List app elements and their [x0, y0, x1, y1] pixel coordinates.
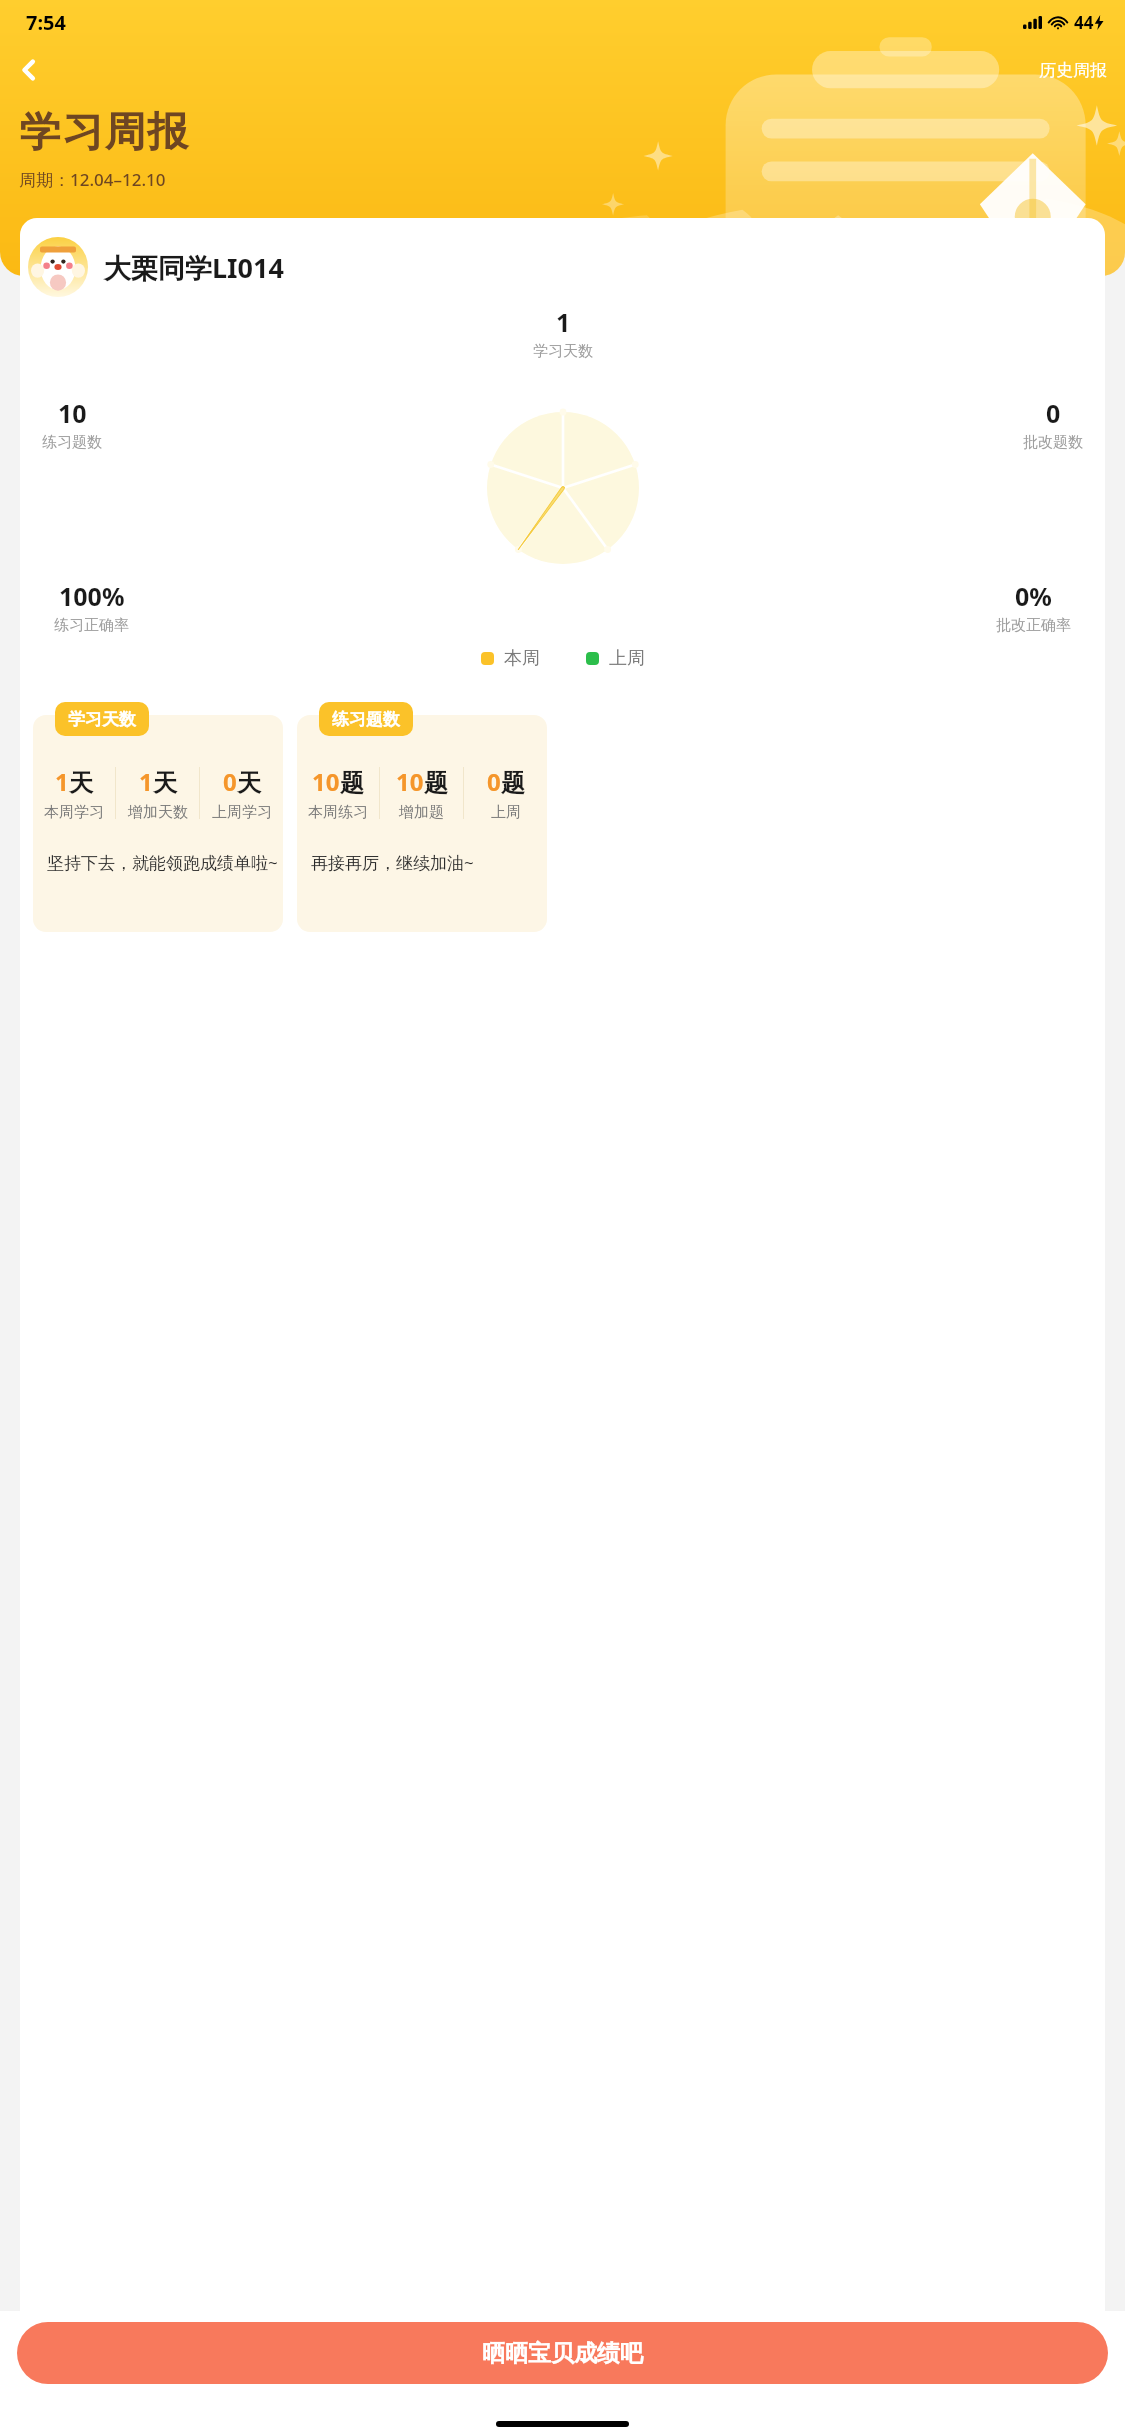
- staticText: 0: [1046, 396, 1061, 430]
- staticText: 10: [58, 396, 87, 430]
- staticText: 0%: [1015, 579, 1052, 613]
- staticText: 100%: [59, 579, 125, 613]
- staticText: 坚持下去，就能领跑成绩单啦~: [47, 851, 278, 874]
- staticText: 增加天数: [128, 803, 188, 822]
- staticText: 本周: [504, 647, 540, 670]
- staticText: 增加题: [399, 803, 444, 822]
- staticText: 44: [1074, 11, 1094, 34]
- staticText: 天: [237, 768, 261, 798]
- staticText: 晒晒宝贝成绩吧: [482, 2339, 643, 2368]
- button[interactable]: 大栗同学LI014: [20, 235, 1105, 299]
- staticText: 学习天数: [68, 709, 136, 730]
- staticText: 练习题数: [332, 709, 400, 730]
- button[interactable]: Back: [4, 45, 54, 95]
- button[interactable]: 历史周报: [1033, 55, 1113, 86]
- staticText: 批改正确率: [996, 616, 1071, 635]
- staticText: 周期：12.04–12.10: [19, 168, 166, 191]
- staticText: 本周学习: [44, 803, 104, 822]
- staticText: 学习周报: [19, 107, 189, 159]
- staticText: 10: [312, 765, 340, 798]
- staticText: 10: [396, 765, 424, 798]
- staticText: 练习正确率: [54, 616, 129, 635]
- button[interactable]: 晒晒宝贝成绩吧: [17, 2322, 1108, 2384]
- staticText: 题: [340, 768, 364, 798]
- staticText: 0: [223, 765, 237, 798]
- staticText: 0: [487, 765, 501, 798]
- staticText: 1: [556, 305, 571, 339]
- button[interactable]: 10: [297, 702, 547, 932]
- staticText: 再接再厉，继续加油~: [311, 851, 474, 874]
- staticText: 上周: [609, 647, 645, 670]
- staticText: 天: [69, 768, 93, 798]
- button[interactable]: 1: [33, 702, 283, 932]
- staticText: 1: [139, 765, 153, 798]
- staticText: 练习题数: [42, 433, 102, 452]
- staticText: 题: [424, 768, 448, 798]
- staticText: 学习天数: [533, 342, 593, 361]
- staticText: 上周: [491, 803, 521, 822]
- staticText: 本周练习: [308, 803, 368, 822]
- staticText: 批改题数: [1023, 433, 1083, 452]
- staticText: 1: [55, 765, 69, 798]
- staticText: 历史周报: [1039, 60, 1107, 81]
- staticText: 题: [501, 768, 525, 798]
- staticText: 大栗同学LI014: [104, 249, 284, 286]
- staticText: 7:54: [26, 9, 66, 36]
- staticText: 上周学习: [212, 803, 272, 822]
- staticText: 天: [153, 768, 177, 798]
